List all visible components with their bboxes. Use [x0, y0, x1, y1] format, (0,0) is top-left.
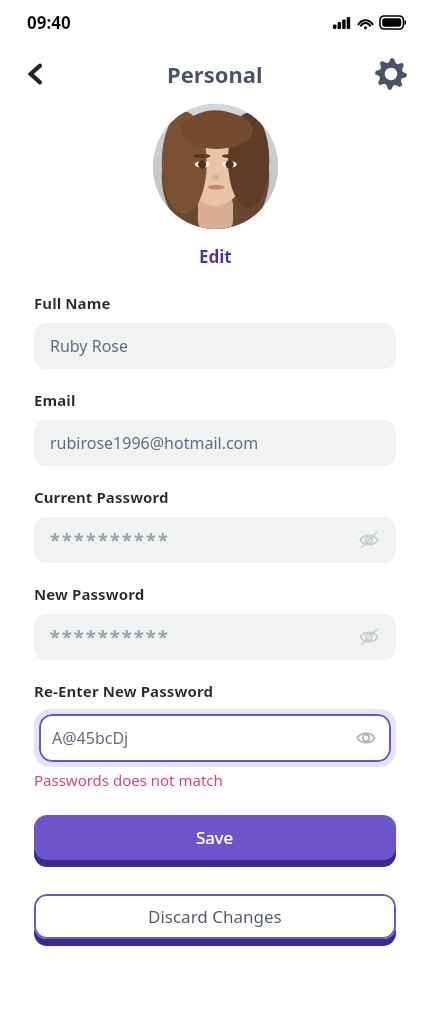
staticText: Email [34, 390, 76, 410]
staticText: * [110, 625, 120, 650]
staticText: * [98, 625, 108, 650]
button[interactable]: rubirose1996@hotmail.com [34, 420, 396, 466]
staticText: Discard Changes [148, 905, 282, 928]
button[interactable]: A@45bcDj [39, 714, 391, 762]
button[interactable]: Discard Changes [34, 894, 396, 939]
staticText: Ruby Rose [50, 335, 129, 357]
button[interactable]: Hide password [353, 725, 379, 751]
staticText: * [146, 528, 156, 553]
staticText: Full Name [34, 293, 111, 313]
staticText: * [158, 625, 168, 650]
staticText: Re-Enter New Password [34, 681, 213, 701]
button[interactable]: Back [14, 52, 58, 96]
staticText: * [86, 625, 96, 650]
button[interactable]: Save [34, 815, 396, 860]
staticText: * [62, 625, 72, 650]
staticText: Save [196, 826, 234, 849]
staticText: * [74, 528, 84, 553]
staticText: Passwords does not match [34, 770, 223, 790]
staticText: Personal [167, 59, 263, 89]
staticText: * [134, 528, 144, 553]
staticText: * [74, 625, 84, 650]
button[interactable]: Settings [368, 51, 414, 97]
button[interactable]: Ruby Rose [34, 323, 396, 369]
staticText: New Password [34, 584, 145, 604]
staticText: rubirose1996@hotmail.com [50, 432, 259, 454]
staticText: * [134, 625, 144, 650]
staticText: A@45bcDj [52, 727, 353, 749]
staticText: Current Password [34, 487, 169, 507]
staticText: * [86, 528, 96, 553]
button[interactable]: * [34, 614, 396, 660]
staticText: * [158, 528, 168, 553]
staticText: 09:40 [27, 11, 71, 34]
button[interactable]: * [34, 517, 396, 563]
staticText: * [110, 528, 120, 553]
staticText: * [98, 528, 108, 553]
staticText: * [146, 625, 156, 650]
staticText: * [122, 528, 132, 553]
button[interactable]: Show password [356, 624, 382, 650]
button[interactable]: Edit [191, 243, 240, 270]
button[interactable]: Show password [356, 527, 382, 553]
staticText: * [62, 528, 72, 553]
staticText: * [50, 528, 60, 553]
staticText: Edit [199, 245, 232, 268]
staticText: * [122, 625, 132, 650]
staticText: * [50, 625, 60, 650]
